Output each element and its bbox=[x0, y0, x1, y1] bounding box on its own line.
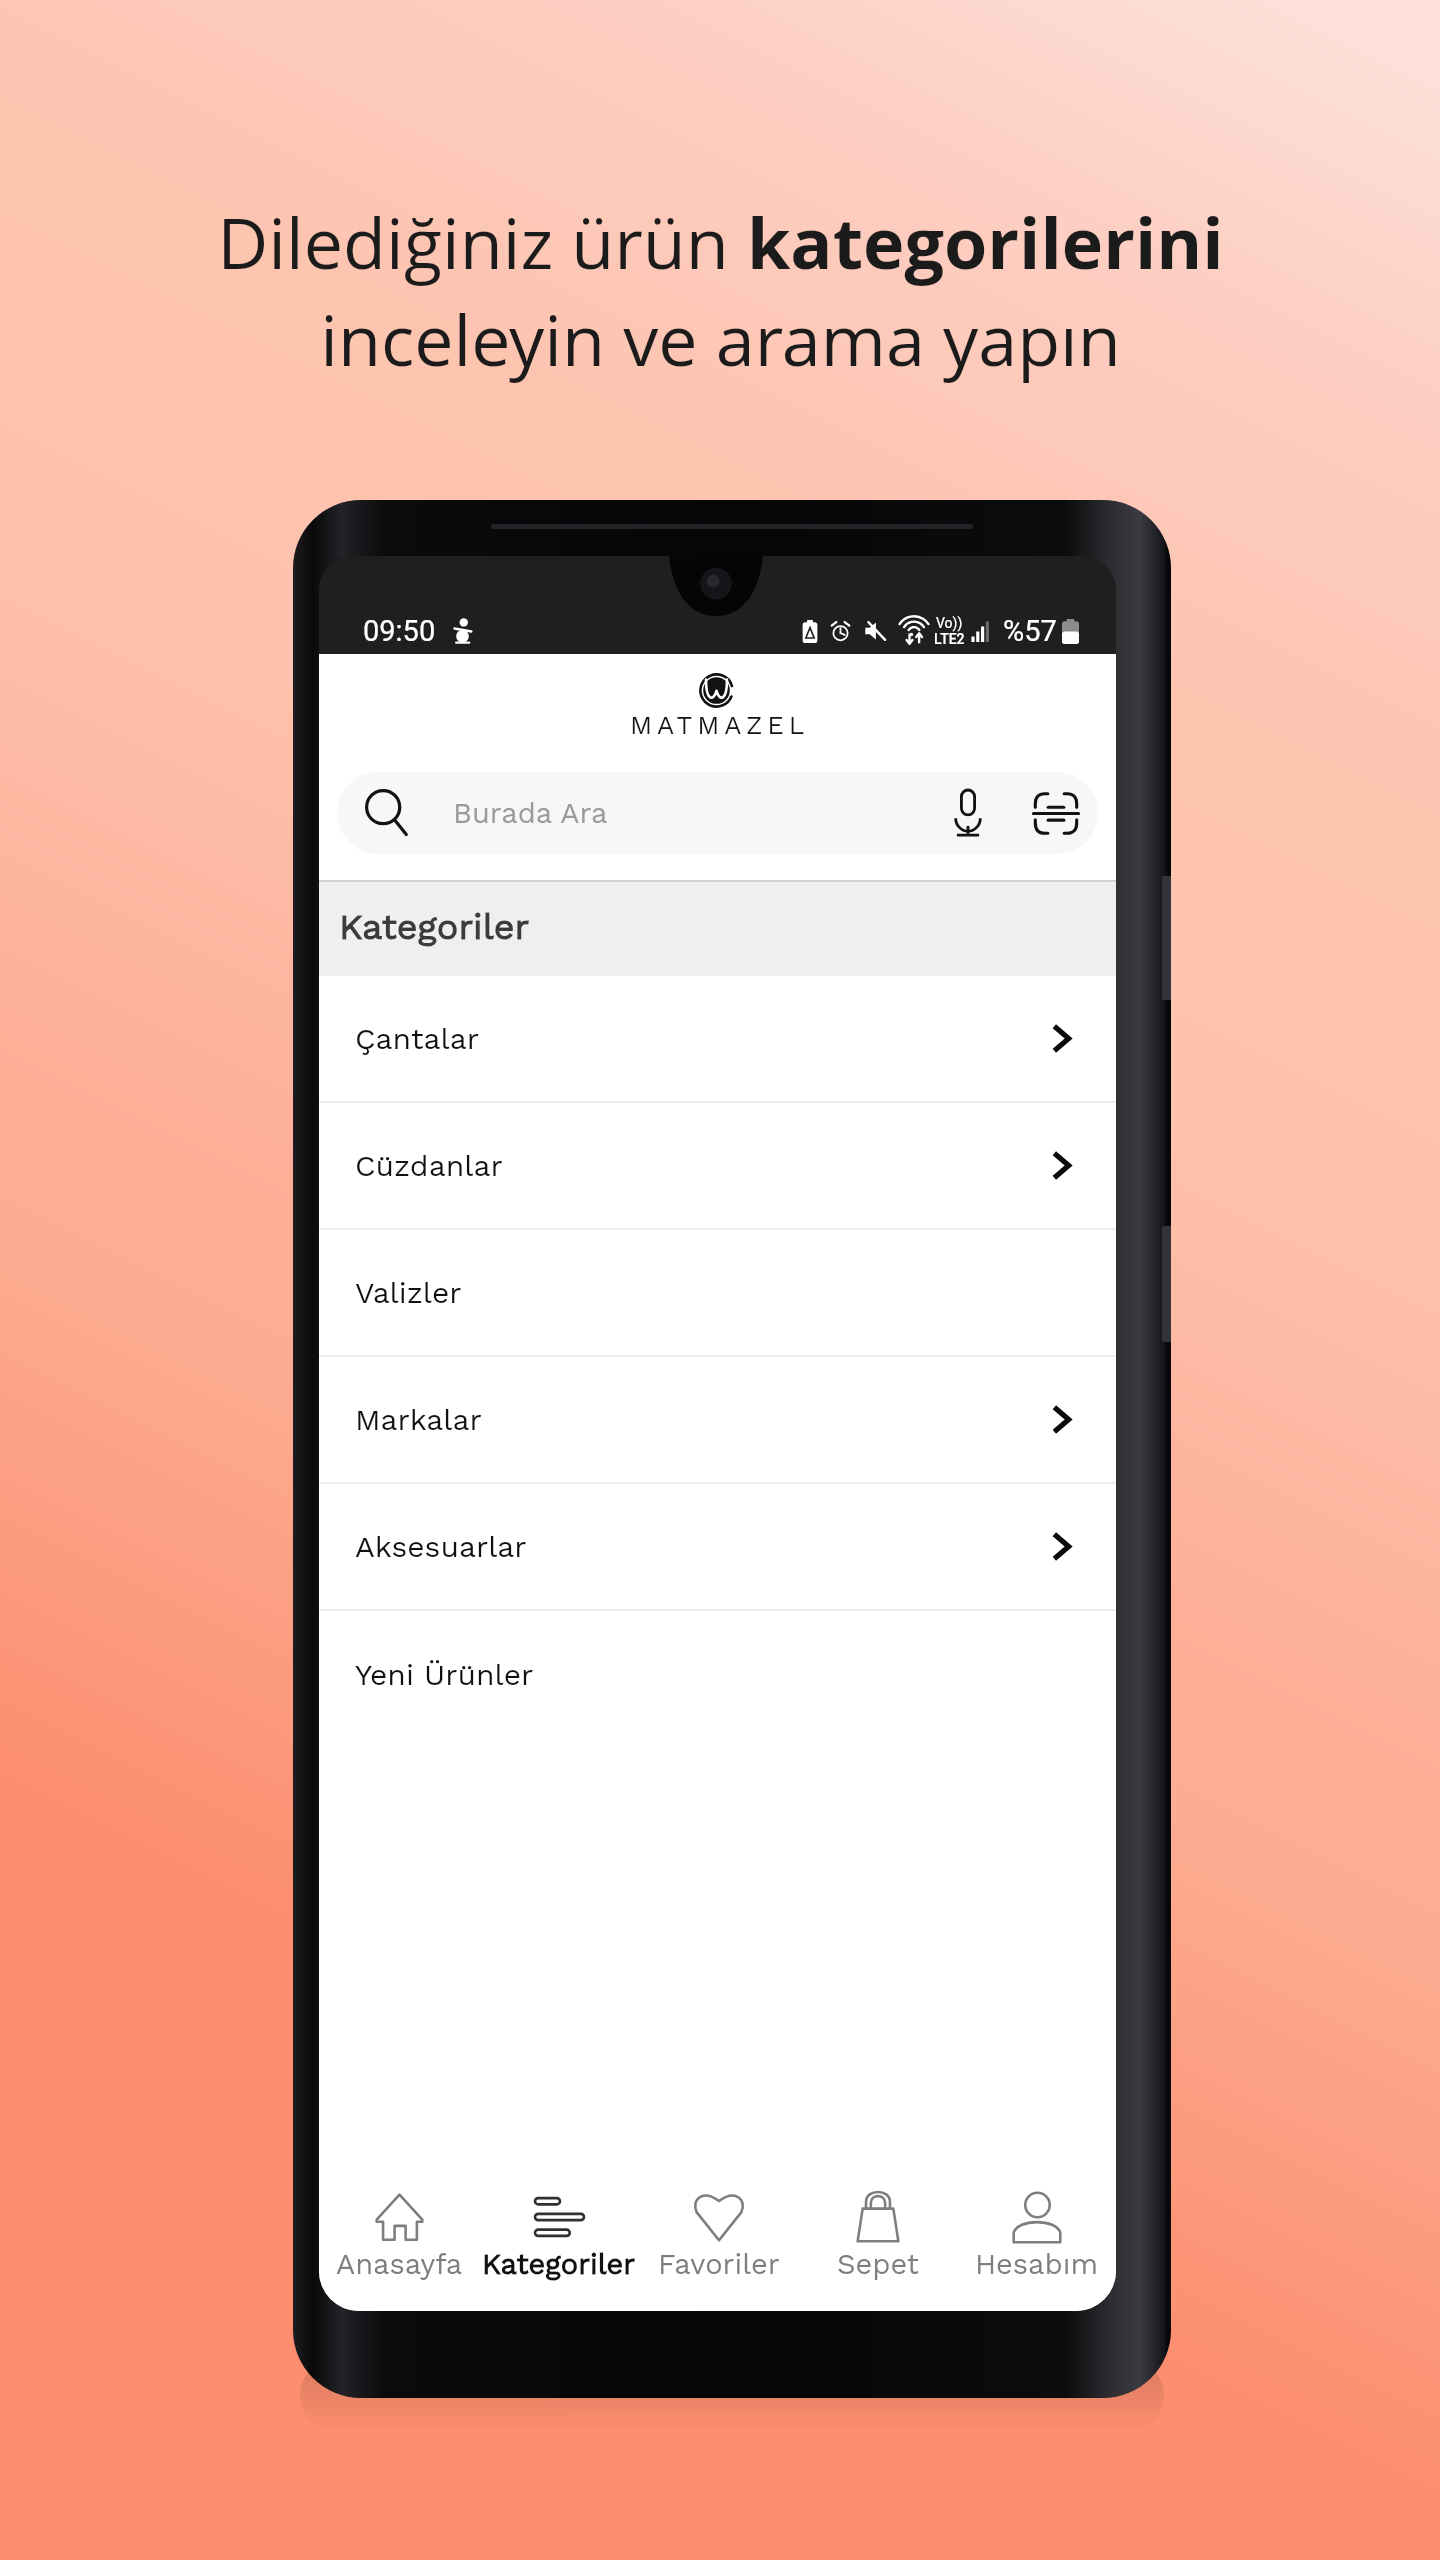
staticText: 09:50 bbox=[363, 614, 436, 648]
button[interactable]: Aksesuarlar bbox=[319, 1484, 1116, 1609]
staticText: Burada Ara bbox=[453, 796, 608, 830]
staticText: Cüzdanlar bbox=[355, 1148, 503, 1183]
button[interactable]: Anasayfa bbox=[319, 2161, 479, 2311]
staticText: Çantalar bbox=[355, 1021, 479, 1056]
staticText: Sepet bbox=[837, 2247, 919, 2281]
staticText: Hesabım bbox=[975, 2247, 1099, 2281]
button[interactable]: Çantalar bbox=[319, 976, 1116, 1101]
staticText: LTE2 bbox=[934, 631, 965, 647]
button[interactable]: Valizler bbox=[319, 1230, 1116, 1355]
button[interactable]: Favoriler bbox=[639, 2161, 798, 2311]
button[interactable]: Kategoriler bbox=[479, 2161, 639, 2311]
button[interactable]: Burada Ara bbox=[337, 772, 1098, 854]
staticText: Vo)) bbox=[936, 615, 963, 631]
button[interactable]: Hesabım bbox=[957, 2161, 1116, 2311]
button[interactable]: Sesli arama bbox=[920, 772, 1016, 854]
staticText: Markalar bbox=[355, 1402, 482, 1437]
staticText: %57 bbox=[1003, 614, 1057, 648]
staticText: Kategoriler bbox=[482, 2247, 636, 2281]
button[interactable]: Yeni Ürünler bbox=[319, 1611, 1116, 1738]
staticText: Aksesuarlar bbox=[355, 1529, 527, 1564]
staticText: Yeni Ürünler bbox=[355, 1657, 534, 1692]
button[interactable]: Sepet bbox=[798, 2161, 957, 2311]
staticText: Kategoriler bbox=[339, 906, 530, 948]
staticText: MATMAZEL bbox=[630, 710, 810, 740]
button[interactable]: Cüzdanlar bbox=[319, 1103, 1116, 1228]
button[interactable]: Barkod tara bbox=[1016, 772, 1096, 854]
staticText: Anasayfa bbox=[336, 2247, 463, 2281]
staticText: Valizler bbox=[355, 1275, 462, 1310]
staticText: Dilediğiniz ürün kategorilerini inceleyi… bbox=[217, 194, 1224, 387]
button[interactable]: Markalar bbox=[319, 1357, 1116, 1482]
staticText: Favoriler bbox=[658, 2247, 780, 2281]
